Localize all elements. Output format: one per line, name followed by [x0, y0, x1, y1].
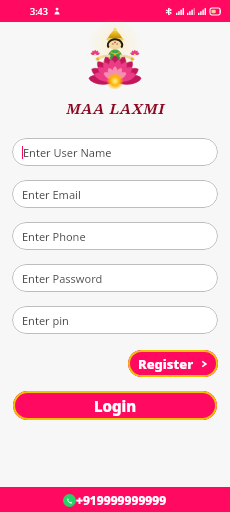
button[interactable]: Enter Password: [12, 264, 218, 292]
button[interactable]: Enter Phone: [12, 222, 218, 250]
staticText: Login: [94, 396, 137, 416]
button[interactable]: Enter pin: [12, 306, 218, 334]
button[interactable]: Enter Email: [12, 180, 218, 208]
button[interactable]: Register: [128, 350, 218, 377]
staticText: Enter Phone: [22, 229, 86, 244]
staticText: Enter Email: [22, 187, 81, 202]
staticText: +919999999999: [76, 492, 167, 508]
other: WhatsApp: [63, 494, 76, 507]
staticText: Register: [138, 355, 194, 373]
button[interactable]: WhatsApp: [0, 487, 230, 512]
button[interactable]: Enter User Name: [12, 138, 218, 166]
button[interactable]: Login: [13, 391, 217, 420]
staticText: Enter Password: [22, 271, 103, 286]
staticText: MAA LAXMI: [66, 98, 165, 118]
staticText: Enter pin: [22, 313, 69, 328]
staticText: 3:43: [30, 5, 48, 17]
staticText: Enter User Name: [23, 145, 112, 160]
